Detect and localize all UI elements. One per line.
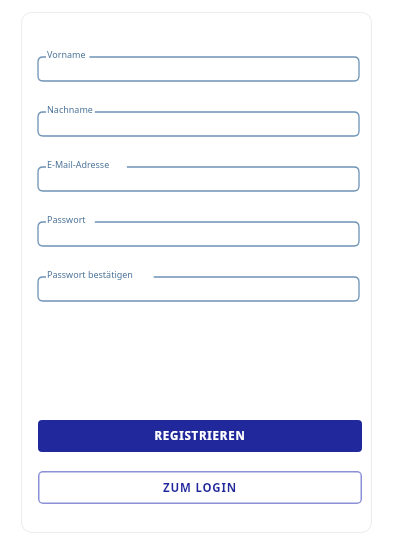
button[interactable]: Passwort bestätigen xyxy=(38,268,359,301)
button[interactable]: REGISTRIEREN xyxy=(38,420,362,452)
staticText: REGISTRIEREN xyxy=(154,428,246,444)
button[interactable]: Passwort xyxy=(38,213,359,246)
staticText: Passwort bestätigen xyxy=(47,268,133,280)
button[interactable]: Nachname xyxy=(38,103,359,136)
staticText: Nachname xyxy=(47,103,93,115)
staticText: E-Mail-Adresse xyxy=(47,158,110,170)
staticText: ZUM LOGIN xyxy=(163,480,237,496)
button[interactable]: ZUM LOGIN xyxy=(38,471,362,504)
staticText: Vorname xyxy=(47,48,86,60)
button[interactable]: Vorname xyxy=(38,48,359,81)
button[interactable]: E-Mail-Adresse xyxy=(38,158,359,191)
staticText: Passwort xyxy=(47,213,86,225)
